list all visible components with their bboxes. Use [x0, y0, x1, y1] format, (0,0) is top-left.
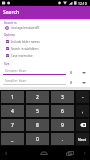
staticText: B: [70, 80, 73, 85]
button[interactable]: Next: [76, 133, 89, 145]
button[interactable]: Case insensitive: [0, 52, 90, 59]
button[interactable]: 7: [1, 119, 24, 131]
staticText: Size: [4, 62, 10, 66]
button[interactable]: ,: [76, 105, 89, 117]
staticText: 1: [11, 94, 14, 101]
staticText: _: [11, 136, 14, 143]
staticText: Next: [78, 137, 87, 142]
button[interactable]: Greater than: [3, 68, 66, 75]
staticText: Search in: [4, 21, 17, 25]
button[interactable]: Search in subfolders: [0, 45, 90, 52]
button[interactable]: Back: [0, 146, 12, 160]
button[interactable]: Expand: [78, 146, 90, 160]
button[interactable]: _: [1, 133, 24, 145]
button[interactable]: .: [51, 133, 74, 145]
button[interactable]: 4: [1, 105, 24, 117]
staticText: 0: [36, 136, 39, 143]
staticText: 4: [11, 108, 14, 115]
staticText: B: [70, 70, 73, 75]
button[interactable]: Recent apps: [64, 146, 76, 160]
button[interactable]: Home: [38, 146, 50, 160]
button[interactable]: 2: [26, 91, 49, 103]
button[interactable]: 1: [1, 91, 24, 103]
button[interactable]: 0: [26, 133, 49, 145]
button[interactable]: B: [70, 70, 90, 75]
staticText: 2: [36, 94, 39, 101]
button[interactable]: Include folder names: [0, 38, 90, 45]
staticText: Smaller than: [5, 78, 27, 83]
button[interactable]: 8: [26, 119, 49, 131]
button[interactable]: Backspace: [76, 119, 89, 131]
staticText: 3: [61, 94, 64, 101]
staticText: Options: [4, 33, 15, 37]
staticText: 5: [36, 108, 39, 115]
staticText: 9: [61, 122, 64, 129]
button[interactable]: 5: [26, 105, 49, 117]
button[interactable]: /storage/emulated/0: [0, 25, 90, 31]
staticText: ,: [82, 108, 84, 114]
staticText: 12:10: [78, 1, 87, 6]
other: Backspace: [80, 123, 86, 127]
staticText: .: [62, 136, 64, 143]
staticText: Greater than: [5, 68, 27, 73]
button[interactable]: 6: [51, 105, 74, 117]
button[interactable]: Smaller than: [3, 78, 66, 85]
staticText: 7: [11, 122, 14, 129]
staticText: Search: [3, 9, 20, 16]
staticText: 8: [36, 122, 39, 129]
staticText: 6: [61, 108, 64, 115]
button[interactable]: -: [76, 91, 89, 103]
staticText: Search in subfolders: [11, 47, 39, 51]
button[interactable]: 9: [51, 119, 74, 131]
button[interactable]: B: [70, 80, 90, 85]
staticText: -: [82, 94, 84, 100]
staticText: /storage/emulated/0: [11, 26, 40, 30]
staticText: Include folder names: [11, 40, 40, 44]
button[interactable]: 3: [51, 91, 74, 103]
staticText: Case insensitive: [11, 54, 33, 58]
